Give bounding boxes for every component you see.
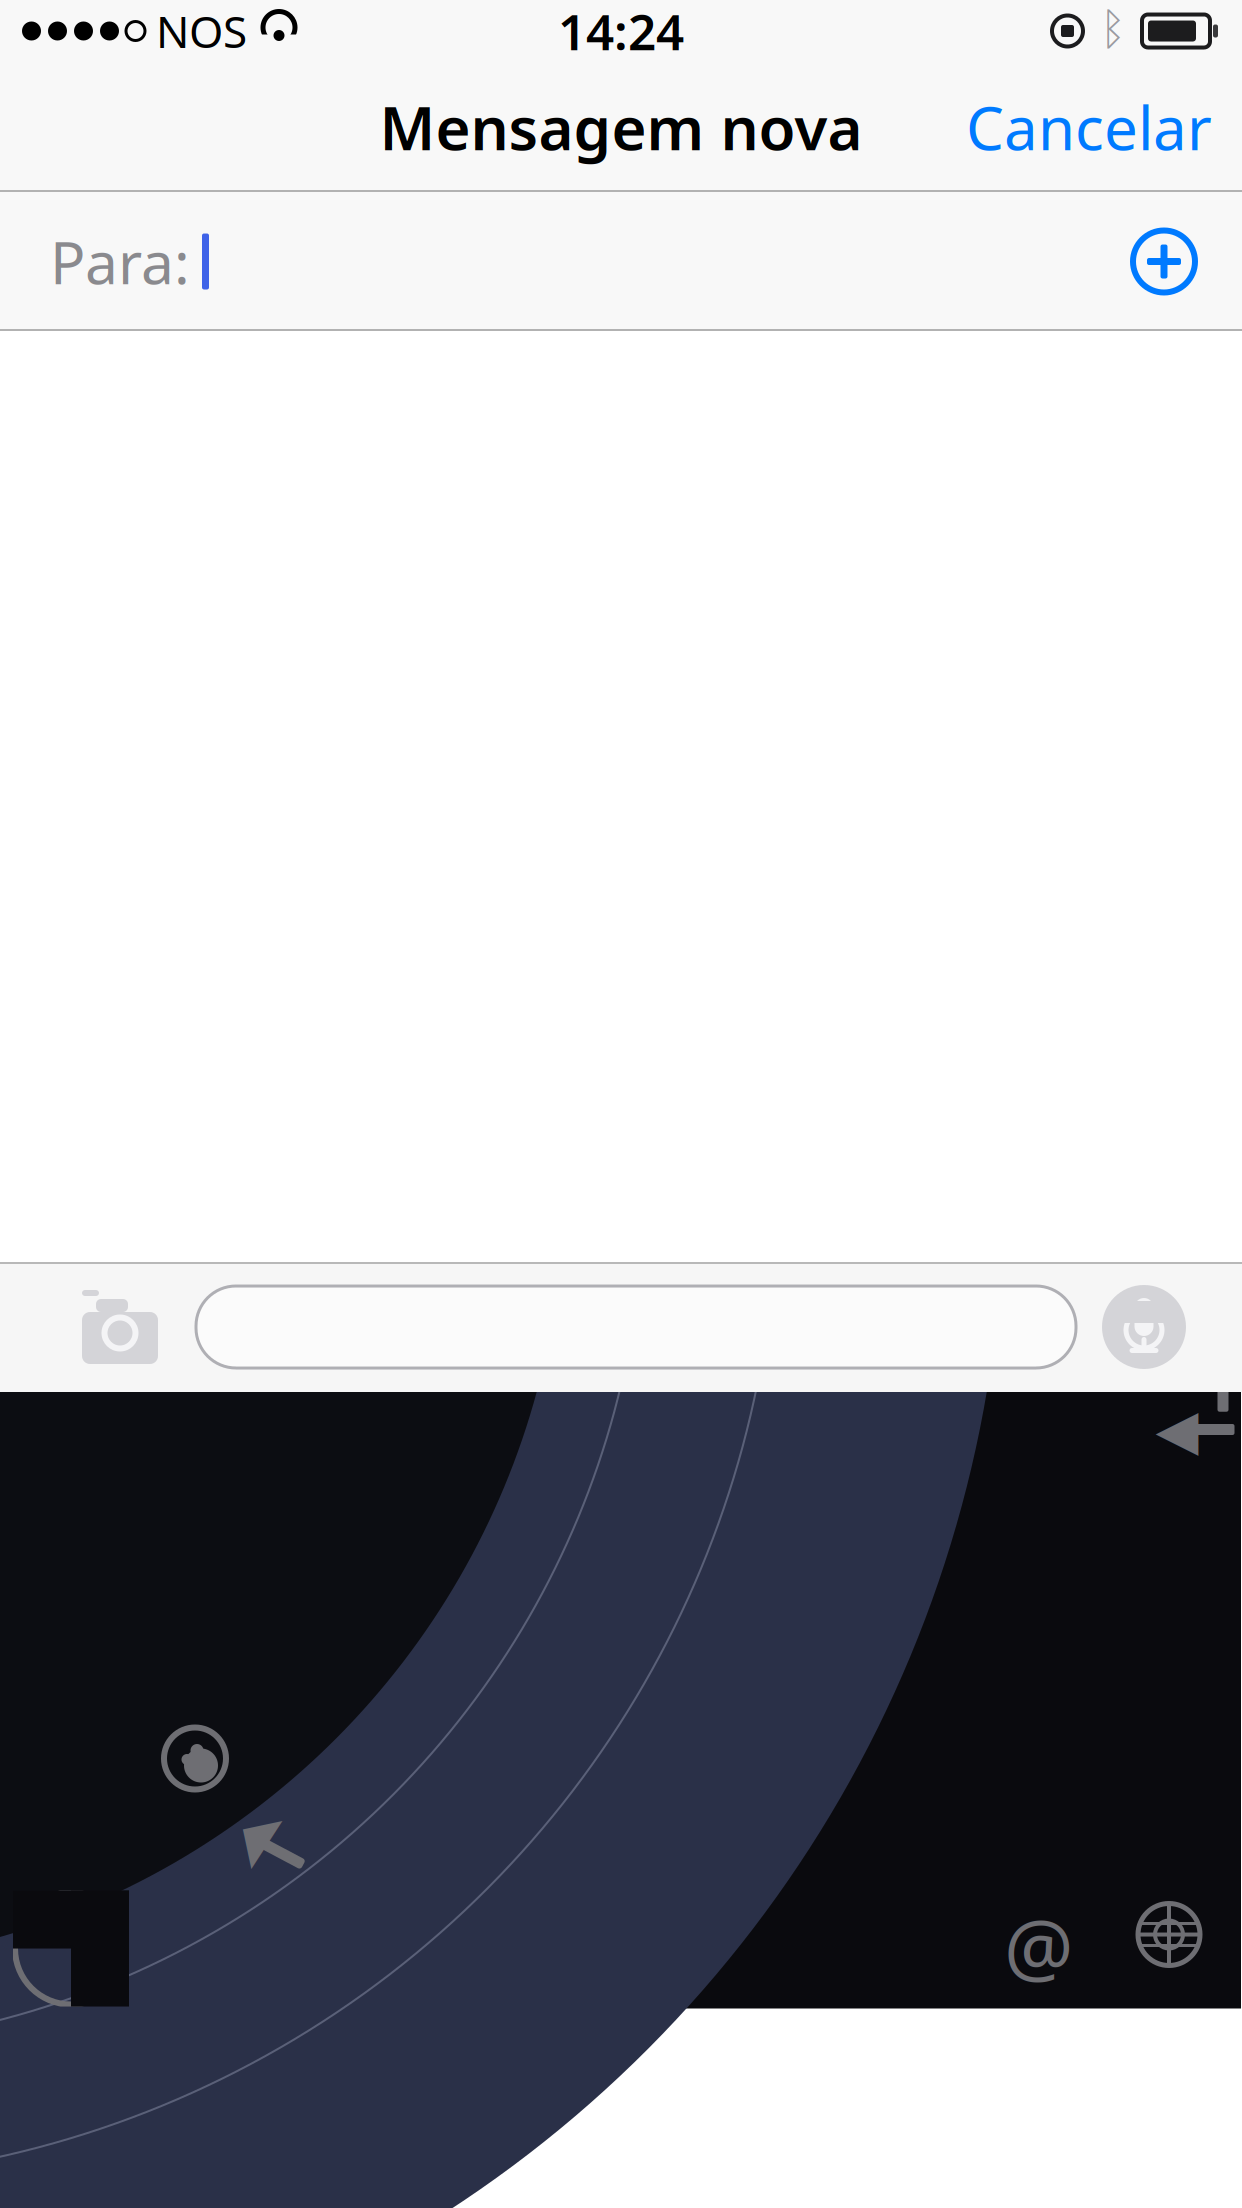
button[interactable]: Cancelar <box>944 55 1234 199</box>
staticText: 123 <box>300 1204 396 1279</box>
staticText: Mensagem nova <box>379 87 862 167</box>
staticText: ◤ <box>245 1810 286 1871</box>
staticText: Cancelar <box>966 87 1212 167</box>
staticText: @ <box>1004 1894 1074 1997</box>
button[interactable]: Add contact <box>1112 209 1216 313</box>
button[interactable]: Backspace <box>1147 1242 1242 1326</box>
staticText: ◀ <box>1155 1398 1198 1461</box>
button[interactable]: 123 <box>293 1193 403 1289</box>
button[interactable]: @ <box>984 1897 1094 1993</box>
button[interactable]: Emoji <box>153 1716 237 1800</box>
button[interactable]: Resize keyboard <box>13 1890 129 2006</box>
staticText: NOS <box>156 2 247 60</box>
button[interactable]: Next keyboard <box>1127 1892 1211 1976</box>
staticText: ᛒ <box>1100 9 1126 52</box>
staticText: Para: <box>50 222 190 300</box>
button[interactable]: Camera <box>62 1269 178 1385</box>
button[interactable]: Dictate <box>1088 1271 1200 1383</box>
button[interactable]: Shift <box>227 1804 323 1890</box>
staticText: ◀ <box>1155 1253 1198 1316</box>
staticText: 14:24 <box>558 0 684 64</box>
button[interactable]: Return <box>1147 1368 1242 1454</box>
